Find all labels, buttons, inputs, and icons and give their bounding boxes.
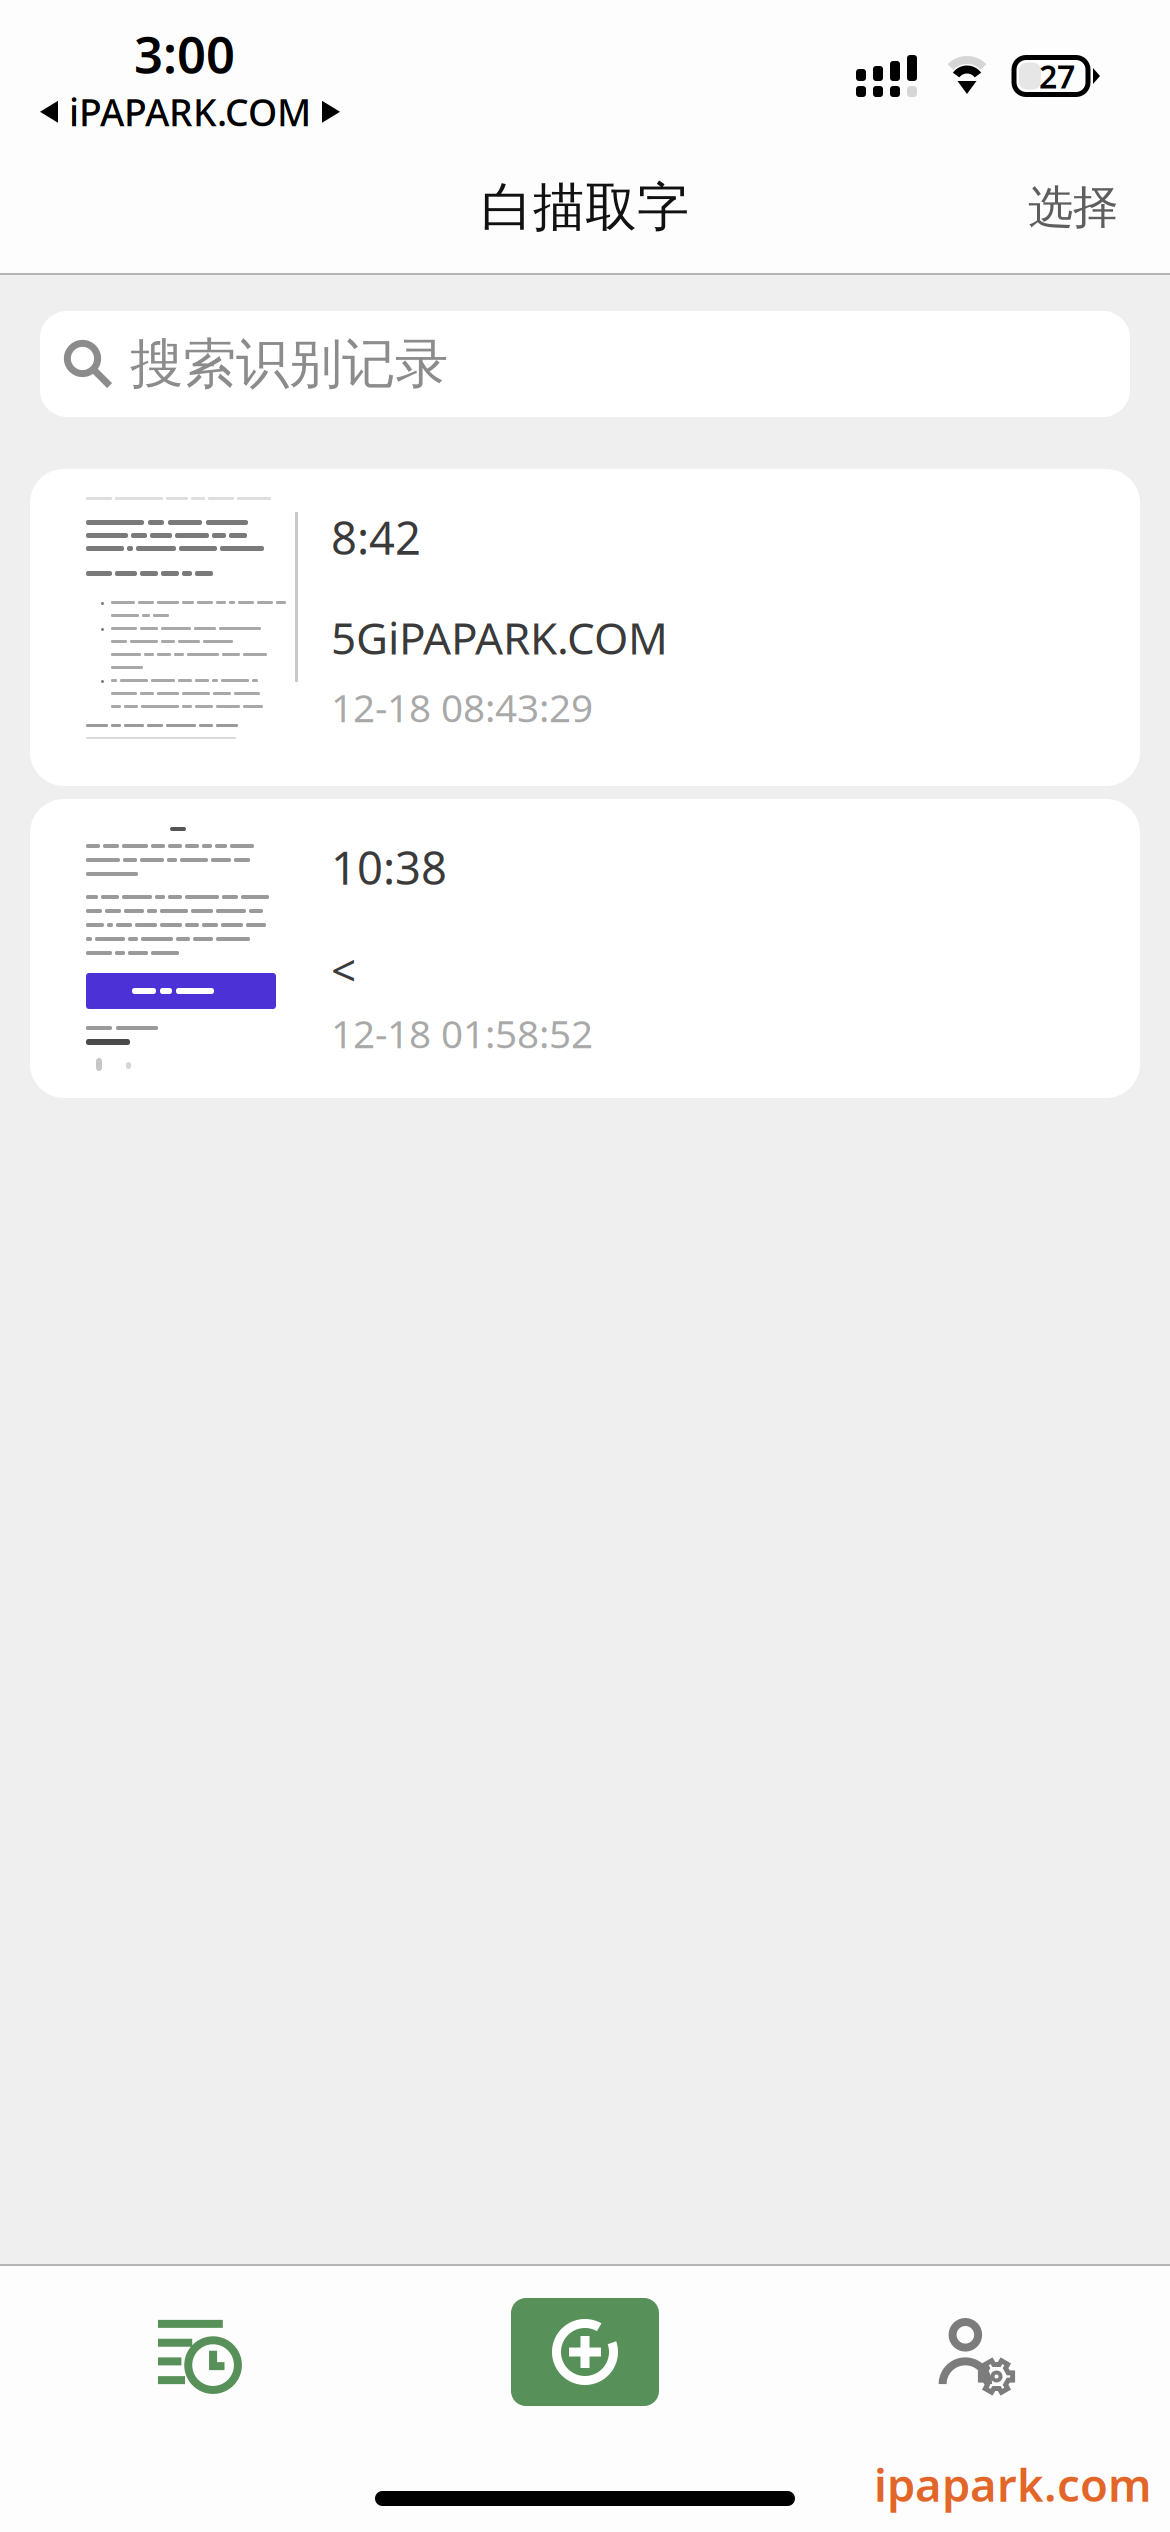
button[interactable]: 10:38 <box>30 799 1140 1098</box>
staticText: iPAPARK.COM <box>69 87 311 137</box>
staticText: ipapark.com <box>874 2454 1152 2514</box>
staticText: 选择 <box>1028 180 1118 235</box>
staticText: 12-18 01:58:52 <box>331 1008 593 1059</box>
button[interactable]: 选择 <box>994 152 1170 262</box>
staticText: 12-18 08:43:29 <box>331 682 593 733</box>
staticText: < <box>331 940 356 999</box>
staticText: 8:42 <box>331 507 421 567</box>
staticText: 10:38 <box>331 837 447 897</box>
staticText: 搜索识别记录 <box>130 331 448 397</box>
staticText: 5GiPAPARK.COM <box>331 608 668 667</box>
button[interactable]: 8:42 <box>30 469 1140 786</box>
button[interactable]: 搜索识别记录 <box>40 311 1130 417</box>
button[interactable]: Account settings <box>884 2287 1072 2429</box>
staticText: 27 <box>1039 55 1075 97</box>
staticText: 3:00 <box>134 20 235 87</box>
button[interactable]: Records <box>100 2281 288 2423</box>
staticText: 白描取字 <box>481 176 689 239</box>
button[interactable]: New scan <box>511 2298 659 2406</box>
